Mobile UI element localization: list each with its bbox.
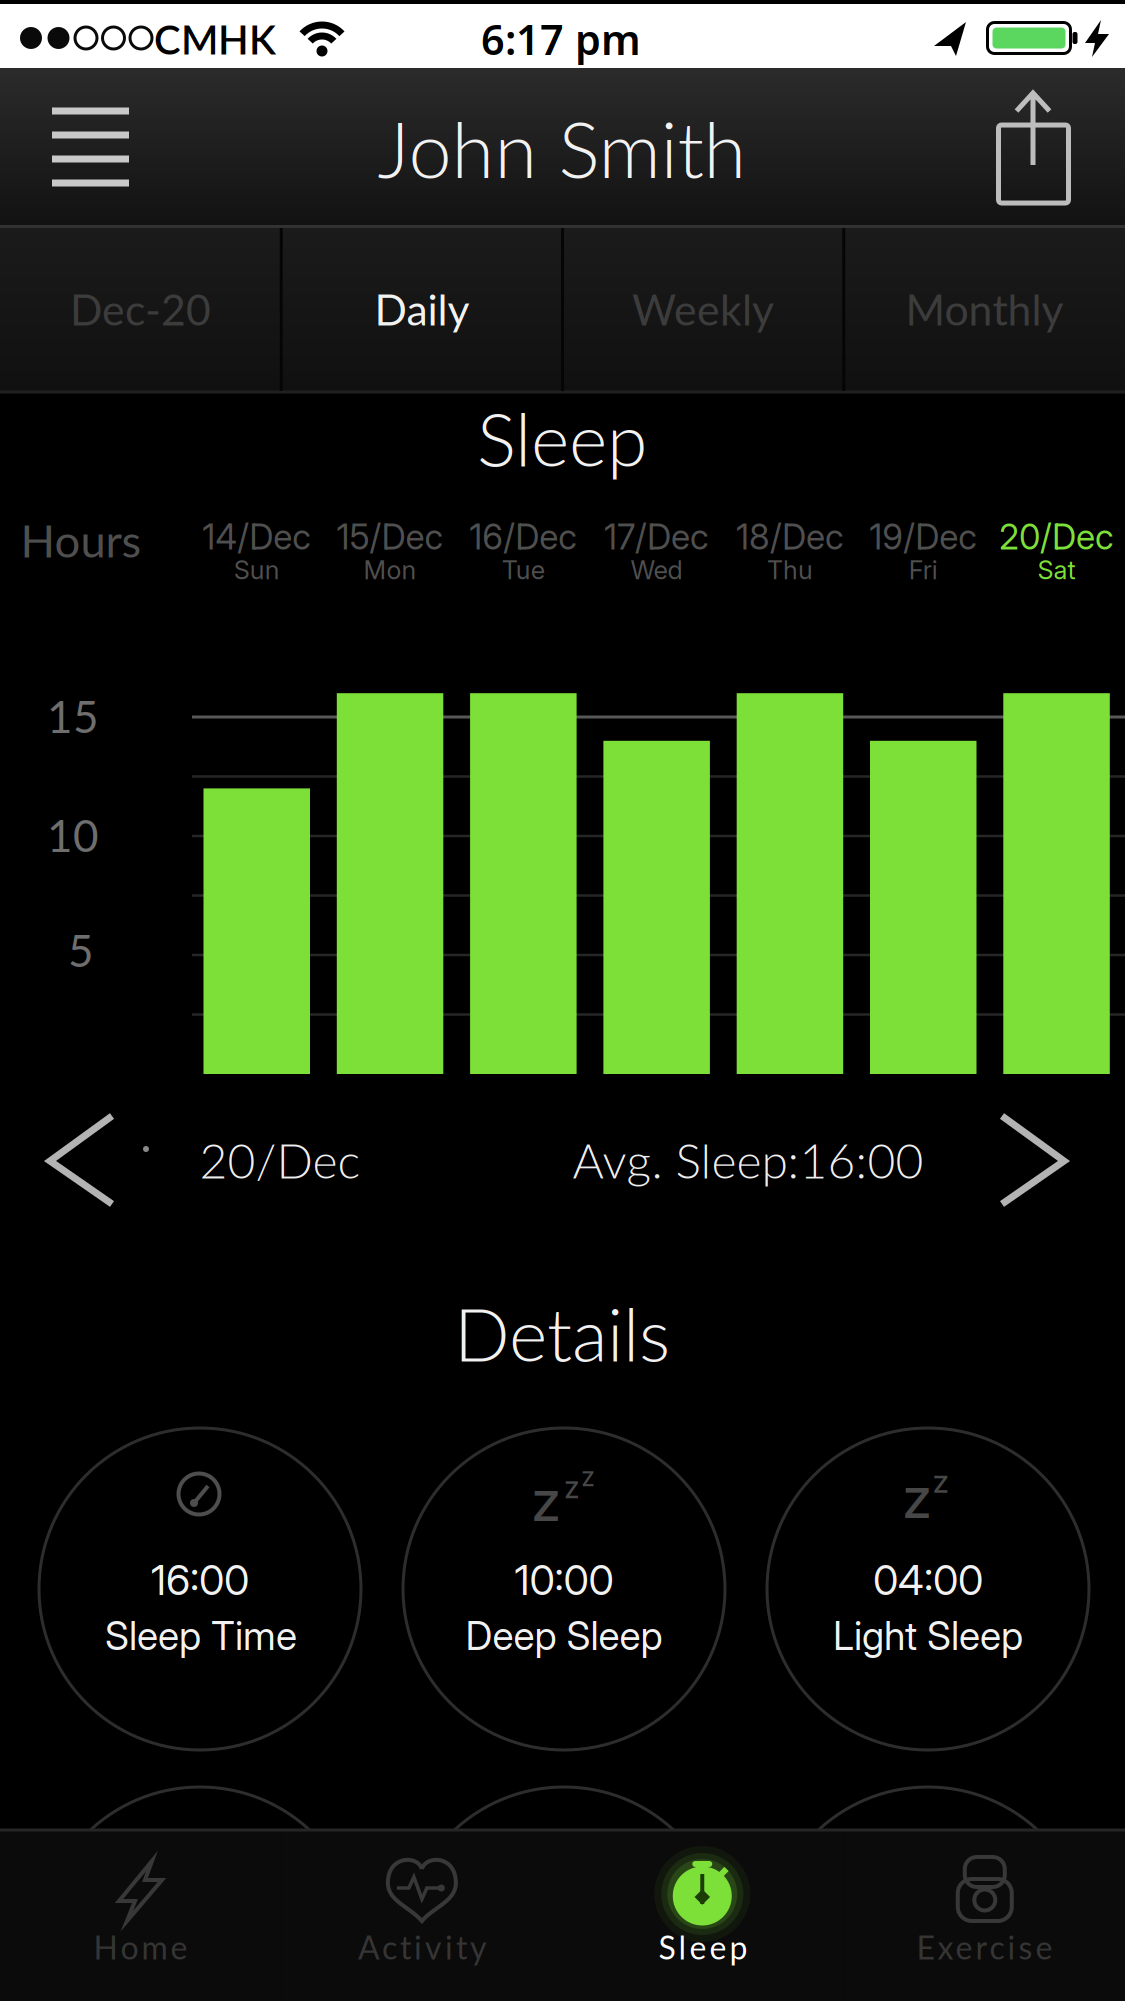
staticText: 18/Dec: [736, 516, 844, 558]
staticText: Sleep: [477, 394, 647, 482]
button[interactable]: Dec-20: [0, 225, 281, 393]
staticText: 15/Dec: [336, 516, 443, 558]
button[interactable]: Exercise: [844, 1830, 1125, 2001]
staticText: Thu: [767, 555, 813, 585]
button[interactable]: Menu: [30, 87, 150, 207]
staticText: 10:00: [514, 1555, 613, 1605]
button[interactable]: Weekly: [562, 225, 844, 393]
staticText: Sun: [234, 555, 280, 585]
staticText: Mon: [363, 555, 416, 585]
staticText: 16/Dec: [469, 516, 577, 558]
staticText: Sleep: [659, 1928, 748, 1966]
staticText: Avg. Sleep:16:00: [572, 1131, 923, 1189]
button[interactable]: Share: [972, 83, 1093, 213]
staticText: 20/Dec: [999, 516, 1114, 558]
staticText: Monthly: [905, 283, 1063, 335]
staticText: Wed: [631, 555, 683, 585]
button[interactable]: Next day: [970, 1090, 1090, 1230]
button[interactable]: Previous day: [24, 1090, 144, 1230]
staticText: 15: [47, 690, 99, 742]
staticText: Details: [454, 1289, 670, 1377]
staticText: Home: [94, 1928, 188, 1966]
staticText: Z: [564, 1476, 579, 1504]
staticText: Hours: [20, 513, 141, 567]
staticText: 04:00: [873, 1555, 983, 1605]
staticText: Z: [904, 1478, 930, 1528]
staticText: 19/Dec: [869, 516, 977, 558]
staticText: 6:17 pm: [481, 12, 641, 66]
staticText: 20/Dec: [199, 1131, 360, 1189]
staticText: Z: [533, 1481, 559, 1531]
button[interactable]: Sleep: [562, 1830, 844, 2001]
staticText: CMHK: [154, 15, 276, 63]
staticText: John Smith: [377, 102, 746, 194]
staticText: Dec-20: [70, 283, 211, 335]
staticText: Sat: [1037, 555, 1075, 585]
button[interactable]: Home: [0, 1830, 281, 2001]
staticText: Sleep Time: [105, 1613, 297, 1659]
staticText: Activity: [358, 1928, 486, 1966]
staticText: Weekly: [632, 283, 774, 335]
staticText: Z: [581, 1467, 594, 1491]
staticText: 5: [68, 924, 94, 976]
staticText: 10: [47, 809, 99, 861]
button[interactable]: Activity: [281, 1830, 562, 2001]
staticText: 17/Dec: [604, 516, 709, 558]
button[interactable]: Daily: [281, 225, 562, 393]
staticText: Daily: [374, 283, 469, 335]
button[interactable]: Monthly: [844, 225, 1125, 393]
staticText: Exercise: [916, 1928, 1052, 1966]
staticText: Light Sleep: [833, 1613, 1023, 1659]
staticText: 16:00: [151, 1555, 249, 1605]
staticText: Z: [933, 1469, 949, 1498]
staticText: Fri: [909, 555, 938, 585]
staticText: 14/Dec: [202, 516, 311, 558]
staticText: Deep Sleep: [465, 1613, 662, 1659]
staticText: Tue: [502, 555, 545, 585]
